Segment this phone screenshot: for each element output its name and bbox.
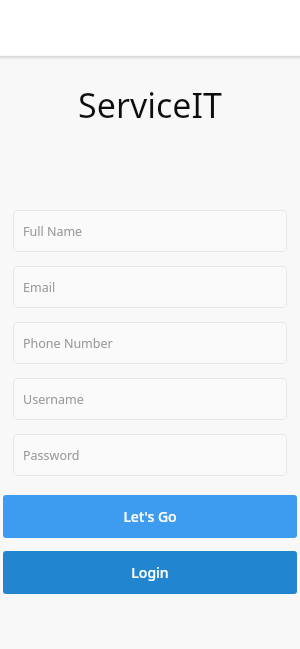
staticText: Username [23, 391, 84, 408]
staticText: Full Name [23, 223, 83, 240]
staticText: ServiceIT [78, 82, 222, 128]
button[interactable]: Password [13, 434, 287, 476]
button[interactable]: Full Name [13, 210, 287, 252]
staticText: Email [23, 279, 56, 296]
button[interactable]: Login [3, 551, 297, 594]
button[interactable]: Email [13, 266, 287, 308]
button[interactable]: Username [13, 378, 287, 420]
staticText: Password [23, 447, 80, 464]
staticText: Login [131, 563, 169, 582]
button[interactable]: Sign up [3, 495, 297, 538]
staticText: Phone Number [23, 335, 113, 352]
staticText: Let's Go [123, 507, 177, 526]
button[interactable]: Phone Number [13, 322, 287, 364]
